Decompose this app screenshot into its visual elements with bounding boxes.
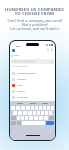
button[interactable]: Search: [46, 121, 54, 125]
button[interactable]: [12, 88, 53, 94]
button[interactable]: [12, 76, 53, 82]
button[interactable]: [41, 111, 44, 115]
button[interactable]: [26, 106, 30, 110]
button[interactable]: [51, 106, 54, 110]
button[interactable]: [43, 106, 46, 110]
button[interactable]: [11, 106, 15, 110]
button[interactable]: [21, 106, 25, 110]
button[interactable]: [49, 111, 52, 115]
staticText: 9:41: [16, 44, 21, 47]
button[interactable]: [16, 106, 20, 110]
button[interactable]: [47, 106, 50, 110]
button[interactable]: Search for a company: [11, 59, 54, 64]
staticText: Back: [14, 54, 20, 57]
button[interactable]: App logo: [12, 49, 15, 52]
button[interactable]: [12, 70, 53, 76]
button[interactable]: [21, 116, 24, 120]
button[interactable]: [12, 82, 53, 88]
button[interactable]: [17, 116, 20, 120]
staticText: HUNDREDS US COMPANIES TO CHOOSE FROM: [5, 7, 64, 16]
button[interactable]: [23, 111, 27, 115]
button[interactable]: [28, 111, 32, 115]
button[interactable]: [18, 111, 22, 115]
staticText: Can't find a company you need? Not a pro…: [7, 18, 63, 31]
button[interactable]: [29, 116, 33, 120]
button[interactable]: [39, 116, 43, 120]
staticText: ALL COMPANIES: [12, 65, 29, 68]
button[interactable]: [37, 111, 40, 115]
button[interactable]: [25, 116, 28, 120]
button[interactable]: [31, 106, 34, 110]
button[interactable]: [13, 111, 17, 115]
button[interactable]: [33, 111, 36, 115]
button[interactable]: [12, 94, 53, 100]
button[interactable]: [44, 116, 48, 120]
button[interactable]: [45, 111, 48, 115]
button[interactable]: [34, 116, 38, 120]
button[interactable]: [39, 106, 42, 110]
button[interactable]: [35, 106, 38, 110]
button[interactable]: Back: [11, 54, 20, 57]
staticText: Search for a company: [12, 60, 35, 63]
